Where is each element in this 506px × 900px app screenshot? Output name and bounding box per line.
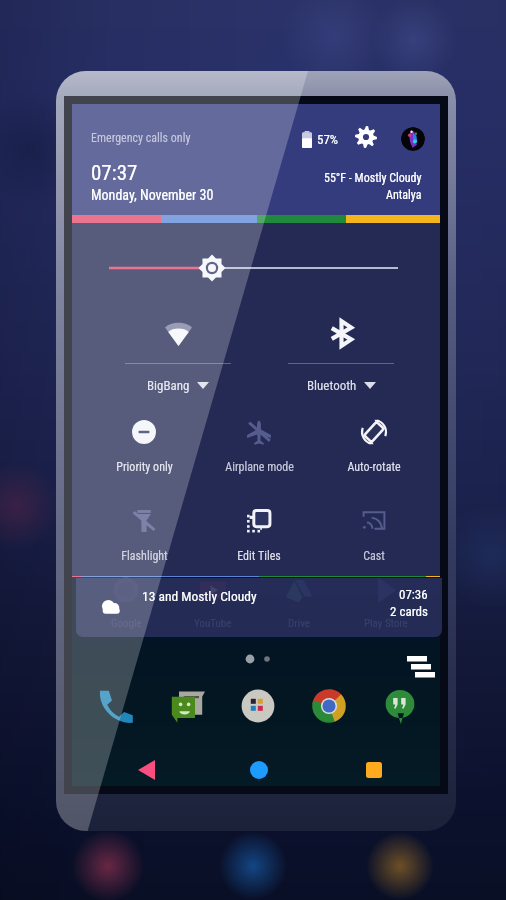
- staticText: Google: [111, 617, 142, 630]
- button[interactable]: BigBang: [125, 316, 231, 393]
- button[interactable]: Bluetooth: [288, 316, 394, 393]
- staticText: Bluetooth: [307, 378, 357, 393]
- staticText: Play Store: [364, 617, 408, 630]
- button[interactable]: YouTube: [180, 574, 246, 630]
- button[interactable]: Phone: [93, 683, 139, 729]
- button[interactable]: Auto-rotate: [316, 418, 432, 474]
- button[interactable]: Hangouts: [377, 683, 423, 729]
- staticText: Emergency calls only: [91, 131, 191, 145]
- staticText: Edit Tiles: [237, 549, 281, 563]
- staticText: Cast: [363, 549, 385, 563]
- staticText: 55°F - Mostly Cloudy: [324, 171, 422, 185]
- button[interactable]: Apps: [235, 683, 281, 729]
- staticText: Priority only: [116, 460, 173, 474]
- button[interactable]: 13 and Mostly Cloudy: [76, 578, 442, 637]
- staticText: 2 cards: [390, 604, 428, 619]
- button[interactable]: Airplane mode: [201, 418, 317, 474]
- button[interactable]: Chrome: [306, 683, 352, 729]
- staticText: Drive: [288, 617, 310, 630]
- button[interactable]: Cast: [316, 507, 432, 563]
- staticText: 13 and Mostly Cloudy: [142, 588, 257, 604]
- staticText: Flashlight: [121, 549, 168, 563]
- button[interactable]: Flashlight: [86, 507, 202, 563]
- staticText: Auto-rotate: [347, 460, 401, 474]
- button[interactable]: Home: [233, 744, 285, 796]
- staticText: 07:36: [399, 587, 428, 602]
- staticText: 57%: [317, 132, 339, 147]
- button[interactable]: Drive: [266, 574, 332, 630]
- button[interactable]: Edit Tiles: [201, 507, 317, 563]
- button[interactable]: Settings: [353, 124, 379, 150]
- button[interactable]: Google: [93, 574, 159, 630]
- button[interactable]: Recents: [348, 744, 400, 796]
- staticText: 07:37: [91, 161, 138, 186]
- staticText: Antalya: [386, 188, 422, 202]
- button[interactable]: Messaging: [164, 683, 210, 729]
- button[interactable]: All apps: [405, 648, 439, 682]
- staticText: Monday, November 30: [91, 187, 214, 203]
- button[interactable]: Play Store: [353, 574, 419, 630]
- button[interactable]: Priority only: [86, 418, 202, 474]
- button[interactable]: Back: [120, 744, 172, 796]
- staticText: YouTube: [194, 617, 232, 630]
- staticText: BigBang: [147, 378, 190, 393]
- staticText: Airplane mode: [225, 460, 294, 474]
- button[interactable]: User profile: [401, 127, 425, 151]
